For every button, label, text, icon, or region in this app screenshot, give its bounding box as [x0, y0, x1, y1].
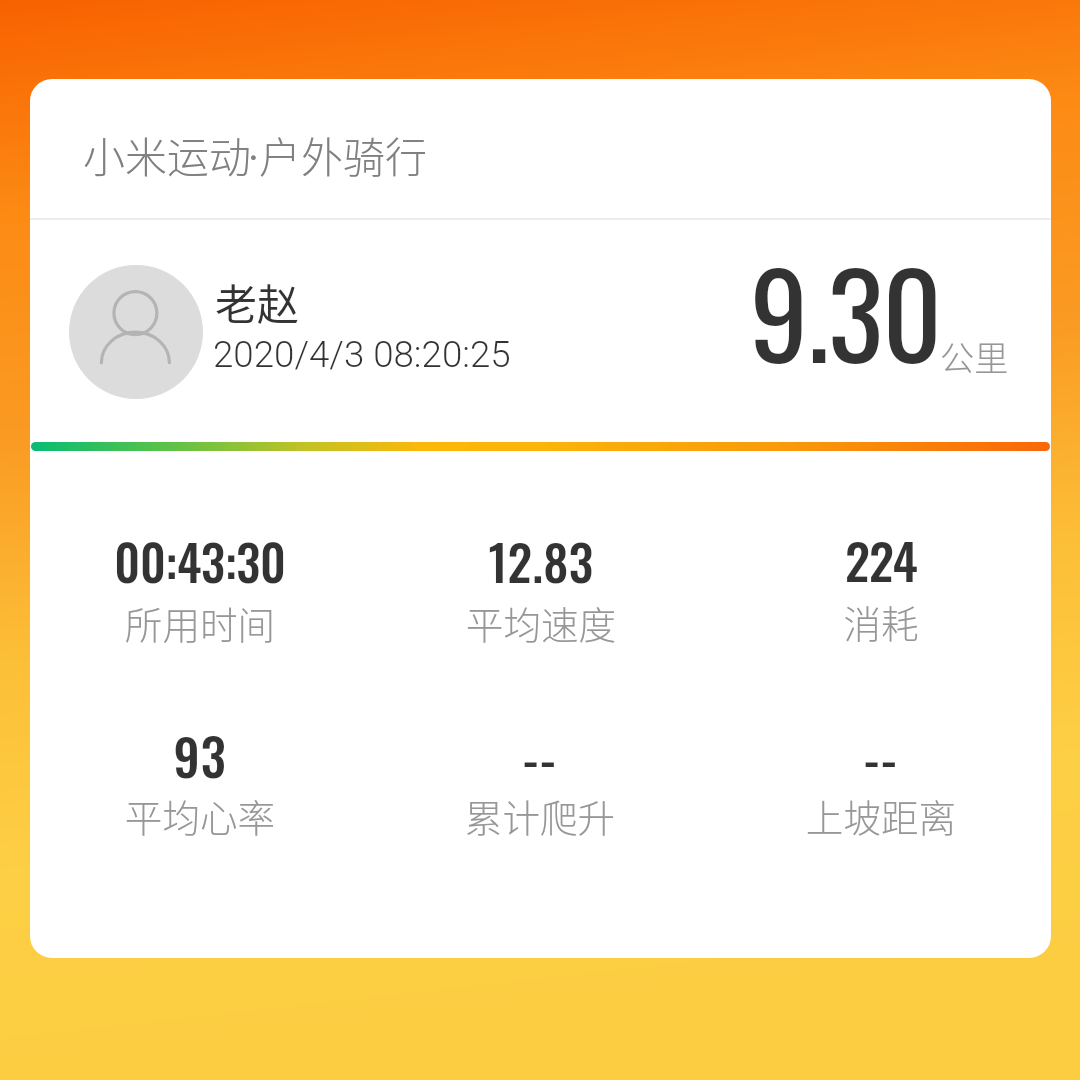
staticText: 平均心率 — [50, 788, 350, 842]
staticText: 224 — [731, 522, 1031, 596]
staticText: 户外骑行 — [259, 124, 428, 185]
staticText: 小米运动 — [83, 124, 252, 185]
button[interactable]: -- — [731, 696, 1031, 836]
staticText: -- — [731, 719, 1031, 793]
button[interactable]: 224 — [731, 499, 1031, 639]
staticText: 老赵 — [215, 271, 300, 332]
staticText: 00:43:30 — [50, 525, 350, 597]
staticText: 所用时间 — [50, 595, 350, 649]
button[interactable]: 93 — [50, 695, 350, 835]
button[interactable]: -- — [390, 696, 690, 836]
staticText: 2020/4/3 08:20:25 — [213, 333, 511, 376]
staticText: 消耗 — [731, 594, 1031, 648]
staticText: 累计爬升 — [390, 788, 690, 842]
button[interactable]: 小米运动 — [30, 79, 1051, 958]
button[interactable]: 12.83 — [391, 501, 691, 641]
staticText: 公里 — [940, 331, 1009, 381]
staticText: 9.30 — [750, 225, 942, 397]
staticText: -- — [390, 719, 690, 793]
staticText: 12.83 — [391, 524, 691, 597]
button[interactable]: 00:43:30 — [50, 502, 350, 642]
staticText: 上坡距离 — [731, 788, 1031, 842]
staticText: 平均速度 — [391, 595, 691, 649]
button[interactable]: Profile photo — [69, 265, 203, 399]
staticText: 93 — [50, 718, 350, 793]
staticText: · — [248, 134, 259, 183]
